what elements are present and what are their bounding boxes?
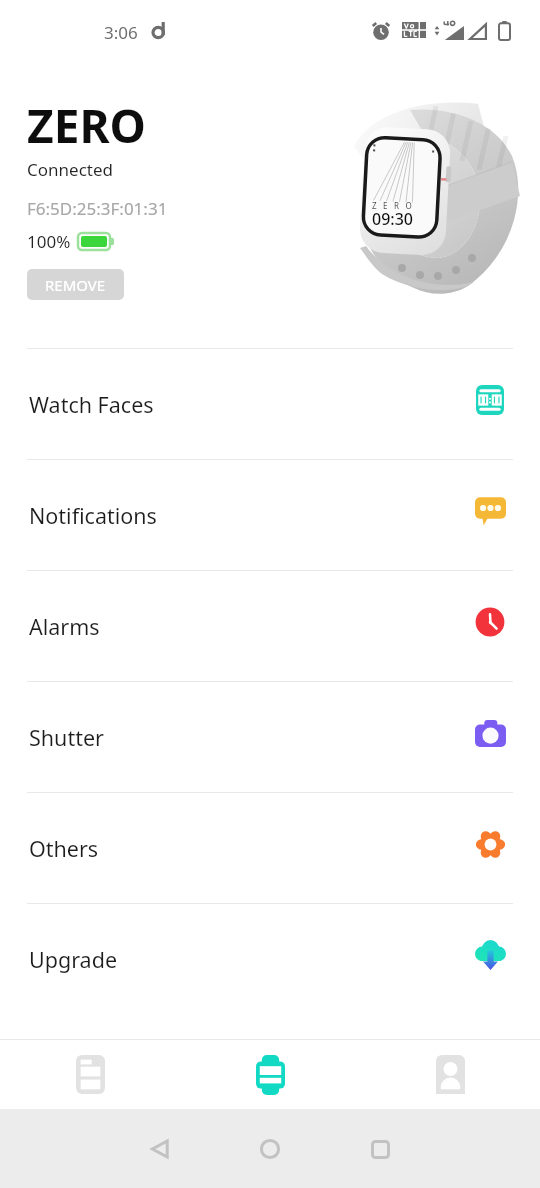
staticText: Alarms <box>29 612 100 641</box>
staticText: Others <box>29 834 99 863</box>
staticText: F6:5D:25:3F:01:31 <box>27 197 168 220</box>
staticText: Upgrade <box>29 945 118 974</box>
button[interactable]: Others <box>0 793 540 903</box>
button[interactable]: REMOVE <box>27 269 124 300</box>
staticText: 100% <box>27 230 71 253</box>
staticText: Watch Faces <box>29 390 154 419</box>
button[interactable]: Alarms <box>0 571 540 681</box>
staticText: Shutter <box>29 723 104 752</box>
staticText: 09:30 <box>372 208 413 230</box>
staticText: Connected <box>27 158 113 181</box>
button[interactable]: Watch Faces <box>0 349 540 459</box>
button[interactable]: Watch <box>180 1040 360 1109</box>
button[interactable]: Devices <box>0 1040 180 1109</box>
staticText: ZERO <box>27 94 146 157</box>
button[interactable]: Home <box>215 1119 325 1179</box>
button[interactable]: Upgrade <box>0 904 540 1014</box>
staticText: 3:06 <box>104 21 138 44</box>
staticText: REMOVE <box>45 275 106 295</box>
button[interactable]: Notifications <box>0 460 540 570</box>
staticText: Z E R O <box>372 200 414 211</box>
button[interactable]: Back <box>105 1119 215 1179</box>
staticText: Notifications <box>29 501 157 530</box>
button[interactable]: Shutter <box>0 682 540 792</box>
button[interactable]: Profile <box>360 1040 540 1109</box>
button[interactable]: Recents <box>325 1119 435 1179</box>
